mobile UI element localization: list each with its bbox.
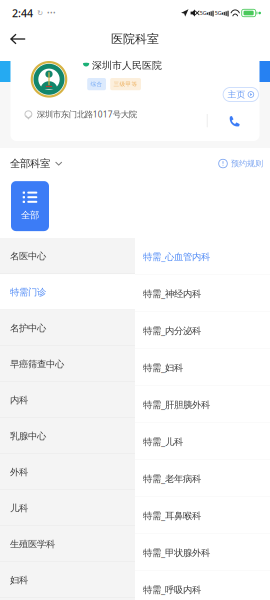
button[interactable]: 主页 xyxy=(223,87,258,101)
staticText: 特需_甲状腺外科 xyxy=(143,546,210,559)
button[interactable]: 拨打电话 xyxy=(217,110,251,132)
staticText: 特需_神经内科 xyxy=(143,287,201,300)
staticText: 乳腺中心 xyxy=(10,430,46,442)
button[interactable]: 外科 xyxy=(0,454,135,490)
staticText: 早癌筛查中心 xyxy=(10,358,64,370)
staticText: 内科 xyxy=(10,394,28,406)
staticText: 5G xyxy=(214,9,222,17)
button[interactable]: 儿科 xyxy=(0,490,135,526)
staticText: 全部 xyxy=(21,209,39,221)
button[interactable]: 返回 xyxy=(0,26,36,52)
button[interactable]: 特需门诊 xyxy=(0,274,135,310)
button[interactable]: 特需_心血管内科 xyxy=(135,238,270,275)
staticText: 特需_妇科 xyxy=(143,361,183,374)
button[interactable]: 预约规则 xyxy=(218,153,263,174)
button[interactable]: 特需_妇科 xyxy=(135,349,270,386)
staticText: 三级甲等 xyxy=(114,81,138,88)
button[interactable]: 特需_神经内科 xyxy=(135,275,270,312)
button[interactable]: 特需_肝胆胰外科 xyxy=(135,386,270,423)
staticText: 特需_老年病科 xyxy=(143,472,201,485)
staticText: 妇科 xyxy=(10,574,28,586)
staticText: ••• xyxy=(43,8,56,18)
staticText: 主页 xyxy=(228,89,246,100)
button[interactable]: 特需_内分泌科 xyxy=(135,312,270,349)
button[interactable]: 名医中心 xyxy=(0,238,135,274)
staticText: 特需_呼吸内科 xyxy=(143,583,201,596)
staticText: 特需_内分泌科 xyxy=(143,324,201,337)
button[interactable]: 全部科室 xyxy=(10,152,62,175)
staticText: 深圳市人民医院 xyxy=(92,59,162,72)
button[interactable]: 特需_儿科 xyxy=(135,423,270,460)
button[interactable]: 妇科 xyxy=(0,562,135,598)
button[interactable]: 特需_呼吸内科 xyxy=(135,571,270,600)
staticText: ↻ xyxy=(33,9,43,17)
staticText: 预约规则 xyxy=(231,158,263,169)
staticText xyxy=(240,9,242,17)
staticText: 外科 xyxy=(10,466,28,478)
staticText: 全部科室 xyxy=(10,157,50,170)
button[interactable]: 生殖医学科 xyxy=(0,526,135,562)
staticText: 特需门诊 xyxy=(10,286,46,298)
button[interactable]: 早癌筛查中心 xyxy=(0,346,135,382)
button[interactable]: 名护中心 xyxy=(0,310,135,346)
staticText: 综合 xyxy=(91,81,103,88)
staticText: 特需_耳鼻喉科 xyxy=(143,509,201,522)
staticText xyxy=(229,9,231,17)
staticText: 名护中心 xyxy=(10,322,46,334)
button[interactable]: 乳腺中心 xyxy=(0,418,135,454)
staticText: 深圳市东门北路1017号大院 xyxy=(37,108,137,120)
staticText: 5G xyxy=(200,9,207,17)
staticText: 医院科室 xyxy=(111,31,159,46)
staticText: 特需_肝胆胰外科 xyxy=(143,398,210,411)
staticText xyxy=(257,9,258,17)
button[interactable]: 特需_老年病科 xyxy=(135,460,270,497)
button[interactable]: 特需_甲状腺外科 xyxy=(135,534,270,571)
staticText: 儿科 xyxy=(10,502,28,514)
staticText: 名医中心 xyxy=(10,250,46,262)
button[interactable]: 特需_耳鼻喉科 xyxy=(135,497,270,534)
button[interactable]: 全部 xyxy=(11,181,49,231)
staticText: 2:44 xyxy=(12,6,33,20)
button[interactable]: 内科 xyxy=(0,382,135,418)
staticText: 特需_儿科 xyxy=(143,435,183,448)
staticText: 特需_心血管内科 xyxy=(143,250,210,263)
staticText: 生殖医学科 xyxy=(10,538,55,550)
